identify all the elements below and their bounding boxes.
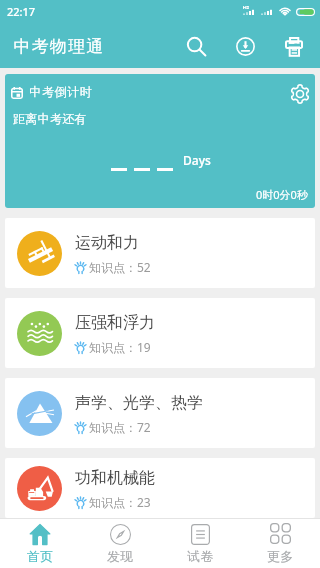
button[interactable]: Search (178, 22, 214, 68)
button[interactable]: 中考倒计时 (5, 74, 315, 208)
staticText: 首页 (27, 548, 54, 564)
staticText: 知识点：23 (89, 494, 151, 510)
staticText: 距离中考还有 (13, 111, 87, 126)
button[interactable]: Print (276, 22, 312, 68)
staticText: 试卷 (187, 548, 214, 564)
staticText: 中考物理通 (13, 36, 104, 57)
button[interactable]: 声学、光学、热学 (5, 378, 315, 448)
staticText: 声学、光学、热学 (75, 393, 203, 413)
button[interactable]: 功和机械能 (5, 458, 315, 518)
button[interactable]: Settings (277, 74, 315, 111)
staticText: 知识点：52 (89, 259, 151, 275)
button[interactable]: 更多 (240, 519, 320, 568)
staticText: 知识点：19 (89, 339, 151, 355)
staticText: 压强和浮力 (75, 313, 155, 333)
staticText: 知识点：72 (89, 419, 151, 435)
button[interactable]: 试卷 (160, 519, 240, 568)
button[interactable]: Download (227, 22, 263, 68)
staticText: 0时0分0秒 (256, 187, 308, 202)
staticText: 运动和力 (75, 233, 139, 253)
button[interactable]: 首页 (0, 519, 80, 568)
staticText: 22:17 (7, 4, 36, 19)
staticText: 功和机械能 (75, 468, 155, 488)
staticText: 中考倒计时 (29, 84, 92, 99)
staticText: 发现 (107, 548, 134, 564)
button[interactable]: 运动和力 (5, 218, 315, 288)
button[interactable]: 发现 (80, 519, 160, 568)
staticText: 更多 (267, 548, 294, 564)
button[interactable]: 压强和浮力 (5, 298, 315, 368)
staticText: Days (183, 152, 211, 168)
